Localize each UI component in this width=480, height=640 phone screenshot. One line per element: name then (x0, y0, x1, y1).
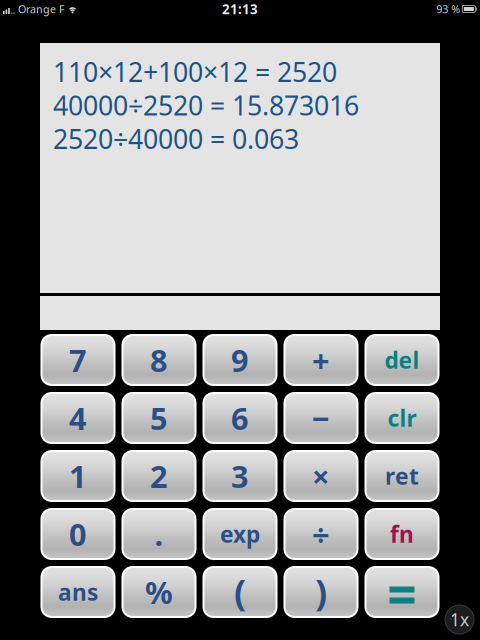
button[interactable]: del (365, 335, 438, 385)
staticText: 9 (231, 340, 249, 380)
staticText: exp (220, 519, 260, 549)
staticText: 6 (231, 398, 249, 438)
staticText: del (384, 345, 419, 375)
button[interactable]: 1 (41, 451, 114, 501)
staticText: ret (385, 461, 419, 491)
staticText: % (145, 572, 173, 612)
staticText: 0 (69, 514, 87, 554)
staticText: 1x (450, 608, 469, 631)
staticText: . (154, 514, 163, 554)
button[interactable]: ÷ (284, 509, 357, 559)
button[interactable]: × (284, 451, 357, 501)
button[interactable]: . (122, 509, 195, 559)
button[interactable]: − (284, 393, 357, 443)
button[interactable]: + (284, 335, 357, 385)
button[interactable]: ans (41, 567, 114, 617)
staticText: 3 (231, 456, 249, 496)
button[interactable]: 0 (41, 509, 114, 559)
button[interactable]: 7 (41, 335, 114, 385)
button[interactable]: 5 (122, 393, 195, 443)
staticText: 4 (69, 398, 87, 438)
staticText: ans (58, 577, 98, 607)
staticText: 5 (150, 398, 168, 438)
button[interactable]: % (122, 567, 195, 617)
staticText: + (312, 340, 330, 380)
staticText: ) (315, 568, 327, 616)
button[interactable]: 2 (122, 451, 195, 501)
button[interactable]: 6 (203, 393, 276, 443)
button[interactable]: 8 (122, 335, 195, 385)
staticText: 40000÷2520 = 15.873016 (53, 87, 359, 123)
staticText: × (312, 456, 330, 496)
button[interactable]: exp (203, 509, 276, 559)
button[interactable]: fn (365, 509, 438, 559)
staticText: fn (390, 519, 414, 549)
staticText: 7 (69, 340, 87, 380)
staticText: ( (234, 568, 246, 616)
button[interactable]: ( (203, 567, 276, 617)
staticText: clr (387, 403, 416, 433)
button[interactable]: 3 (203, 451, 276, 501)
button[interactable]: 4 (41, 393, 114, 443)
button[interactable]: ret (365, 451, 438, 501)
staticText: Orange F (18, 2, 65, 16)
staticText: 2520÷40000 = 0.063 (53, 121, 299, 156)
staticText: 8 (150, 340, 168, 380)
staticText: 21:13 (222, 0, 258, 18)
button[interactable]: Scale 1x (445, 605, 474, 634)
button[interactable]: 9 (203, 335, 276, 385)
button[interactable]: ) (284, 567, 357, 617)
staticText: 1 (69, 456, 87, 496)
staticText: − (312, 398, 330, 438)
staticText: 93 % (436, 2, 460, 16)
staticText: 2 (150, 456, 168, 496)
button[interactable]: Equals (365, 567, 438, 617)
staticText: 110×12+100×12 = 2520 (53, 54, 337, 89)
staticText: ÷ (312, 514, 330, 554)
button[interactable]: clr (365, 393, 438, 443)
